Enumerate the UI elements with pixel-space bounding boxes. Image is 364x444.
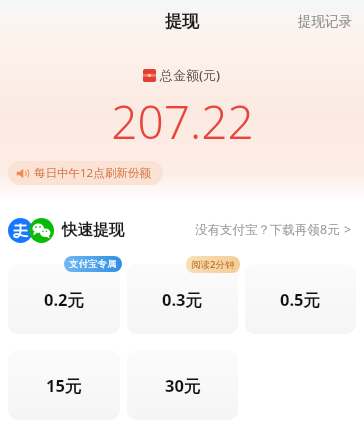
other: Announcement <box>16 167 29 180</box>
staticText: 没有支付宝？下载再领8元 <box>195 221 340 238</box>
staticText: 0.2元 <box>44 288 85 311</box>
staticText: 阅读2分钟 <box>191 258 235 271</box>
staticText: > <box>344 221 352 238</box>
button[interactable]: 0.3元 <box>127 264 238 334</box>
staticText: 0.3元 <box>162 288 203 311</box>
staticText: 提现记录 <box>298 13 352 30</box>
staticText: 0.5元 <box>280 288 321 311</box>
staticText: 每日中午12点刷新份额 <box>34 165 151 181</box>
other: WeChat <box>29 218 54 243</box>
button[interactable]: 0.2元 <box>8 264 120 334</box>
staticText: 30元 <box>165 374 201 397</box>
button[interactable]: 提现记录 <box>286 7 364 36</box>
button[interactable]: Announcement <box>8 161 163 185</box>
button[interactable]: 15元 <box>8 350 120 420</box>
staticText: 快速提现 <box>62 220 124 240</box>
staticText: 总金额(元) <box>160 66 221 84</box>
staticText: 提现 <box>165 11 199 32</box>
other: Alipay <box>8 218 33 243</box>
staticText: 15元 <box>46 374 82 397</box>
button[interactable]: 0.5元 <box>245 264 356 334</box>
button[interactable]: 没有支付宝？下载再领8元 <box>191 215 356 244</box>
button[interactable]: 30元 <box>127 350 238 420</box>
staticText: 207.22 <box>111 90 254 153</box>
staticText: 支付宝专属 <box>69 258 117 270</box>
